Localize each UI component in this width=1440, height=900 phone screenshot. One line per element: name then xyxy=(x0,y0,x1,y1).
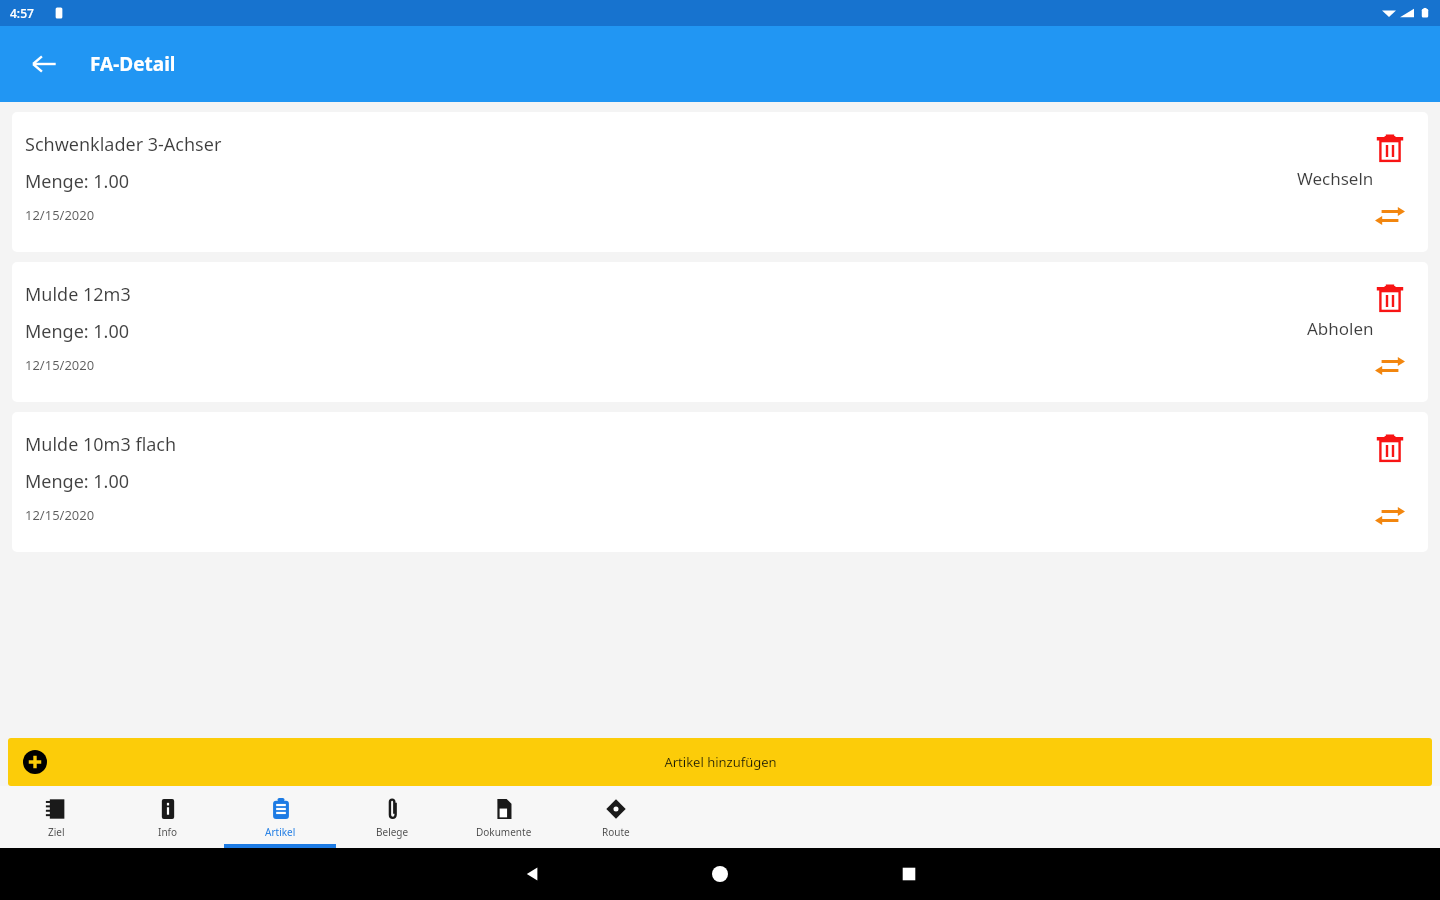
staticText: Belege xyxy=(376,825,409,839)
button[interactable]: Artikel hinzufügen xyxy=(8,738,1432,786)
staticText: Artikel hinzufügen xyxy=(664,753,777,771)
staticText: Menge: 1.00 xyxy=(25,469,130,494)
staticText: Artikel xyxy=(265,825,296,839)
staticText: Info xyxy=(158,825,178,839)
button[interactable]: Swap xyxy=(1370,196,1410,236)
staticText: 12/15/2020 xyxy=(25,206,95,224)
staticText: Abholen xyxy=(1307,317,1374,340)
staticText: 12/15/2020 xyxy=(25,356,95,374)
button[interactable]: Delete xyxy=(1370,128,1410,168)
button[interactable]: Info xyxy=(112,786,224,848)
staticText: Schwenklader 3-Achser xyxy=(25,132,222,157)
button[interactable]: Back xyxy=(22,42,66,86)
button[interactable]: Schwenklader 3-Achser xyxy=(12,112,1428,252)
staticText: Wechseln xyxy=(1297,167,1374,190)
staticText: Ziel xyxy=(48,825,65,839)
staticText: Route xyxy=(602,825,630,839)
button[interactable]: Swap xyxy=(1370,496,1410,536)
button[interactable]: Back xyxy=(522,863,544,885)
staticText: Mulde 12m3 xyxy=(25,282,131,307)
button[interactable]: Recents xyxy=(900,865,918,883)
button[interactable]: Belege xyxy=(336,786,448,848)
staticText: Mulde 10m3 flach xyxy=(25,432,177,457)
button[interactable]: Home xyxy=(710,864,730,884)
button[interactable]: Dokumente xyxy=(448,786,560,848)
staticText: 12/15/2020 xyxy=(25,506,95,524)
button[interactable]: Swap xyxy=(1370,346,1410,386)
button[interactable]: Mulde 12m3 xyxy=(12,262,1428,402)
button[interactable]: Delete xyxy=(1370,278,1410,318)
staticText: Menge: 1.00 xyxy=(25,319,130,344)
button[interactable]: Artikel xyxy=(224,786,336,848)
button[interactable]: Ziel xyxy=(0,786,112,848)
button[interactable]: Route xyxy=(560,786,672,848)
staticText: 4:57 xyxy=(10,5,34,21)
staticText: Menge: 1.00 xyxy=(25,169,130,194)
staticText: FA-Detail xyxy=(90,51,176,77)
staticText: Dokumente xyxy=(476,825,532,839)
button[interactable]: Delete xyxy=(1370,428,1410,468)
button[interactable]: Mulde 10m3 flach xyxy=(12,412,1428,552)
